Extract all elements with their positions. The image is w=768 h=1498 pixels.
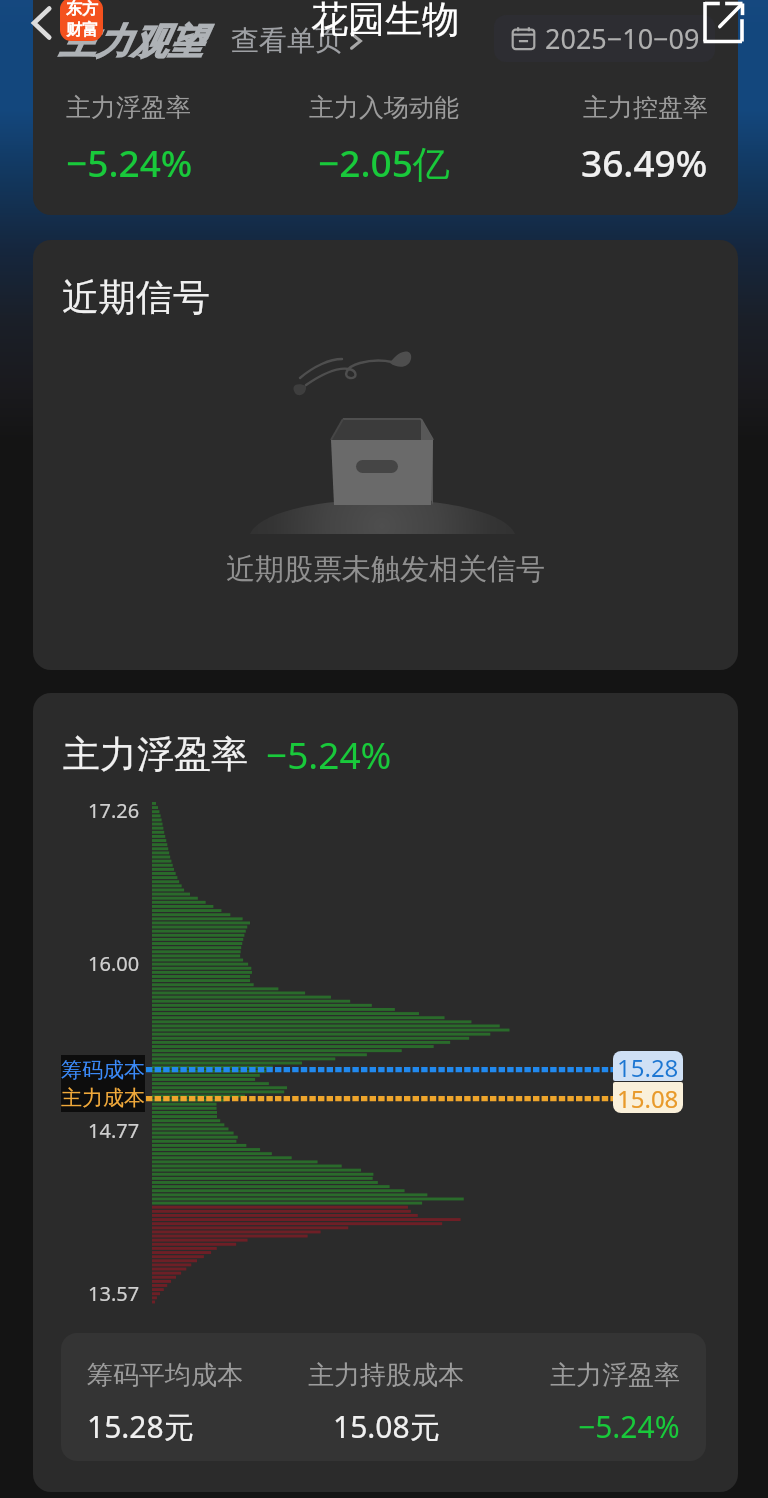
staticText: 17.26 (88, 797, 140, 824)
staticText: 2025−10−09 (545, 20, 700, 57)
staticText: 16.00 (88, 950, 140, 977)
button[interactable]: 主力浮盈率 (498, 1359, 680, 1447)
staticText: 财富 (66, 20, 98, 40)
button[interactable]: Back (6, 0, 64, 48)
staticText: 主力成本 (61, 1085, 145, 1111)
button[interactable]: 15.08 (613, 1082, 683, 1113)
staticText: 15.08 (617, 1082, 679, 1113)
staticText: −5.24% (578, 1406, 680, 1447)
staticText: −5.24% (266, 729, 392, 779)
staticText: 主力入场动能 (309, 92, 459, 123)
staticText: 近期股票未触发相关信号 (226, 551, 545, 588)
staticText: 花园生物 (311, 0, 459, 43)
button[interactable]: 查看单页 (231, 23, 364, 58)
button[interactable]: 主力入场动能 (293, 92, 475, 188)
button[interactable]: 2025−10−09 (494, 15, 715, 62)
staticText: 15.28 (617, 1051, 679, 1081)
staticText: −2.05亿 (318, 137, 450, 188)
staticText: 15.08元 (333, 1406, 440, 1447)
staticText: 筹码成本 (61, 1057, 145, 1083)
staticText: 筹码平均成本 (87, 1359, 243, 1392)
staticText: 查看单页 (231, 23, 343, 58)
staticText: 近期信号 (62, 274, 210, 321)
staticText: 主力浮盈率 (550, 1359, 680, 1392)
staticText: 主力控盘率 (583, 92, 708, 123)
button[interactable]: 主力浮盈率 (66, 92, 246, 187)
staticText: 15.28元 (87, 1406, 194, 1447)
staticText: −5.24% (66, 137, 193, 187)
staticText: 14.77 (88, 1117, 140, 1144)
button[interactable]: Share (696, 0, 750, 49)
staticText: 主力浮盈率 (66, 92, 191, 123)
button[interactable]: 主力控盘率 (530, 92, 708, 187)
staticText: 主力持股成本 (308, 1359, 464, 1392)
button[interactable]: 东方财富 (60, 0, 103, 41)
button[interactable]: 15.28 (613, 1051, 683, 1081)
staticText: 东方 (66, 0, 98, 19)
button[interactable]: 主力持股成本 (286, 1359, 486, 1447)
staticText: 主力浮盈率 (63, 731, 248, 778)
staticText: 36.49% (581, 137, 708, 187)
button[interactable]: 筹码平均成本 (87, 1359, 243, 1447)
staticText: 13.57 (88, 1280, 140, 1307)
staticText: 主力观望 (59, 19, 203, 64)
